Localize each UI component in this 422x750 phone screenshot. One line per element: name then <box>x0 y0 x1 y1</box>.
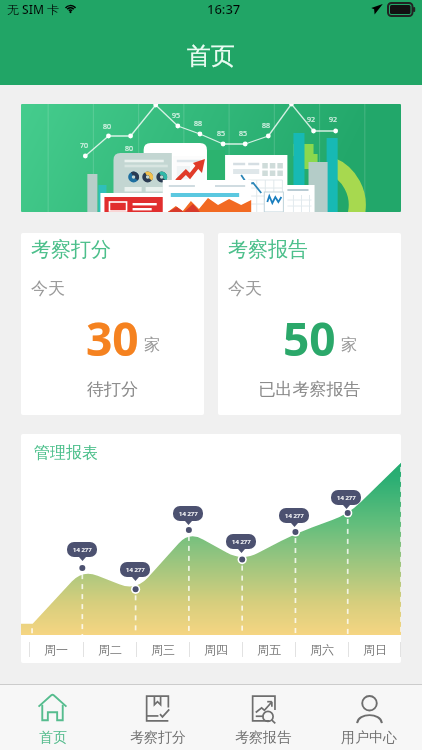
button[interactable]: 考察报告 <box>210 685 316 750</box>
staticText: 14 277 <box>73 546 92 554</box>
staticText: 周日 <box>363 642 387 657</box>
button[interactable]: 考察报告 <box>218 233 401 415</box>
staticText: 今天 <box>31 278 65 299</box>
staticText: 14 277 <box>126 566 145 574</box>
staticText: 80 <box>125 144 134 154</box>
button[interactable]: 首页 <box>0 685 105 750</box>
staticText: 88 <box>262 121 271 131</box>
staticText: 92 <box>329 115 338 125</box>
button[interactable]: 用户中心 <box>316 685 422 750</box>
staticText: 80 <box>103 122 112 132</box>
staticText: 95 <box>172 111 181 121</box>
staticText: 考察打分 <box>31 237 111 262</box>
button[interactable]: 考察打分 <box>21 233 204 415</box>
staticText: 待打分 <box>31 379 194 400</box>
staticText: 85 <box>217 129 226 139</box>
staticText: 周六 <box>310 642 334 657</box>
staticText: 92 <box>307 115 316 125</box>
staticText: 周二 <box>98 642 122 657</box>
staticText: 16:37 <box>207 0 241 18</box>
staticText: 考察打分 <box>130 729 186 747</box>
staticText: 考察报告 <box>228 237 308 262</box>
button[interactable]: 考察打分 <box>105 685 210 750</box>
staticText: 今天 <box>228 278 262 299</box>
staticText: 首页 <box>39 729 67 747</box>
staticText: 周一 <box>44 642 68 657</box>
staticText: 管理报表 <box>34 443 98 463</box>
staticText: 周三 <box>151 642 175 657</box>
staticText: 14 277 <box>285 512 304 520</box>
staticText: 已出考察报告 <box>228 379 391 400</box>
staticText: 家 <box>144 335 160 355</box>
staticText: 无 SIM 卡 <box>7 1 60 17</box>
staticText: 50 <box>283 307 336 370</box>
staticText: 14 277 <box>179 510 198 518</box>
staticText: 考察报告 <box>235 729 291 747</box>
staticText: 首页 <box>187 41 235 71</box>
staticText: 70 <box>80 141 89 151</box>
staticText: 88 <box>194 119 203 129</box>
staticText: 家 <box>341 335 357 355</box>
staticText: 85 <box>239 129 248 139</box>
staticText: 14 277 <box>232 538 251 546</box>
staticText: 用户中心 <box>341 729 397 747</box>
staticText: 周五 <box>257 642 281 657</box>
staticText: 周四 <box>204 642 228 657</box>
staticText: 30 <box>86 307 139 370</box>
staticText: 14 277 <box>337 494 356 502</box>
